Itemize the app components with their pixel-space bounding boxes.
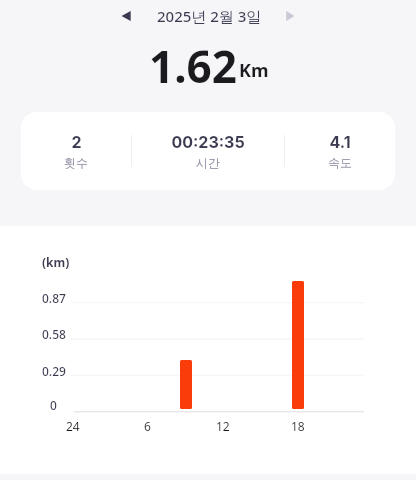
staticText: 00:23:35 [171, 132, 245, 151]
staticText: Km [239, 58, 269, 83]
button[interactable]: 2 [21, 112, 131, 190]
staticText: 1.62 [149, 36, 237, 96]
button[interactable]: Next day [276, 2, 304, 30]
staticText: 24 [66, 418, 80, 434]
staticText: 속도 [328, 155, 352, 170]
button[interactable]: 2025년 2월 3일 [157, 6, 262, 26]
staticText: 6 [144, 418, 151, 434]
staticText: 18 [291, 418, 305, 434]
button[interactable]: 4.1 [285, 112, 395, 190]
staticText: 0 [50, 397, 57, 413]
button[interactable]: Previous day [112, 2, 140, 30]
button[interactable]: 00:23:35 [132, 112, 284, 190]
staticText: 횟수 [64, 155, 88, 170]
staticText: 2 [71, 132, 82, 151]
staticText: 4.1 [329, 132, 351, 151]
staticText: 0.58 [42, 326, 66, 342]
staticText: 시간 [196, 155, 220, 170]
staticText: 0.87 [42, 290, 66, 306]
staticText: 0.29 [42, 363, 66, 379]
staticText: 12 [216, 418, 230, 434]
staticText: (km) [42, 254, 70, 270]
